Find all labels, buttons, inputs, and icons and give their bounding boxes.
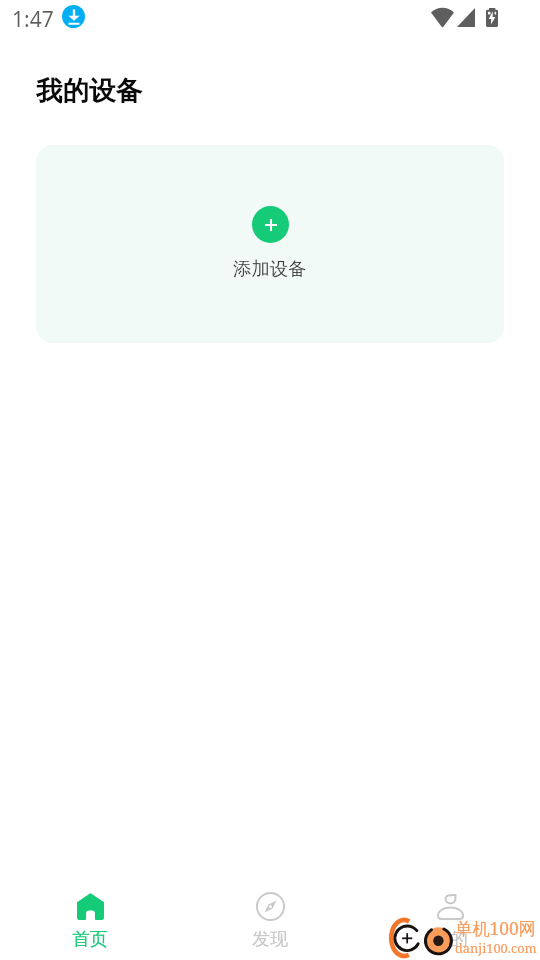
staticText: 首页 <box>72 928 108 951</box>
staticText: 单机100网 <box>455 917 536 941</box>
staticText: 添加设备 <box>233 257 307 280</box>
button[interactable]: 我的 <box>360 872 540 951</box>
staticText: 我的 <box>432 928 468 951</box>
button[interactable]: 添加设备 <box>252 206 289 243</box>
staticText: 1:47 <box>12 5 54 27</box>
staticText: danji100.com <box>455 939 537 956</box>
button[interactable]: 添加设备 <box>36 145 504 343</box>
button[interactable]: 发现 <box>180 872 360 951</box>
staticText: 我的设备 <box>36 74 142 107</box>
button[interactable]: 首页 <box>0 872 180 951</box>
staticText: 发现 <box>252 928 288 951</box>
